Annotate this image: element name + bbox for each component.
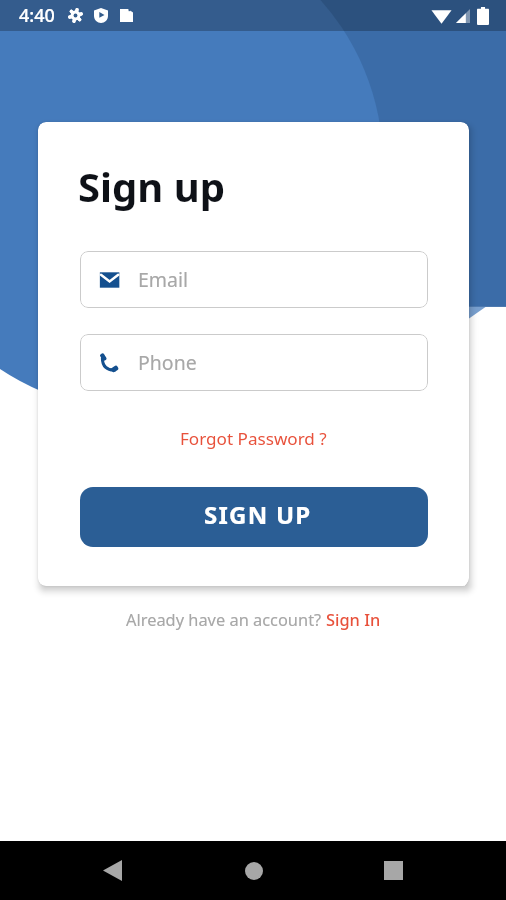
staticText: Already have an account? (126, 608, 326, 630)
staticText: 4:40 (19, 3, 55, 28)
staticText: SIGN UP (204, 498, 312, 531)
button[interactable]: Forgot Password ? (174, 424, 333, 453)
staticText: Email (138, 266, 189, 293)
button[interactable]: Phone (80, 334, 428, 391)
staticText: Sign In (326, 608, 381, 630)
button[interactable]: SIGN UP (80, 487, 428, 547)
staticText: Phone (138, 349, 197, 376)
button[interactable]: Email (80, 251, 428, 308)
button[interactable]: Home (203, 841, 304, 900)
button[interactable]: Already have an account? (118, 604, 389, 634)
button[interactable]: Back (62, 841, 162, 900)
staticText: Sign up (78, 159, 225, 213)
button[interactable]: Recent apps (343, 841, 444, 900)
